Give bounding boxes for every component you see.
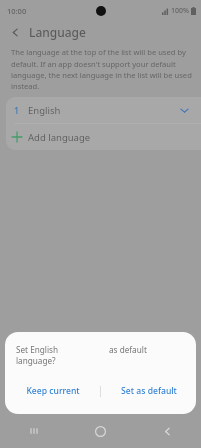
staticText: Language (29, 24, 86, 40)
staticText: 10:00 (7, 6, 27, 16)
staticText: Keep current (26, 385, 80, 397)
staticText: as default (109, 344, 147, 355)
staticText: English (28, 104, 61, 117)
button[interactable]: Navigate up (4, 21, 26, 43)
staticText: Set English language? (16, 344, 59, 366)
button[interactable]: Add language (6, 124, 201, 150)
button[interactable]: Set as default (101, 378, 196, 404)
button[interactable]: Back (134, 414, 201, 448)
staticText: 1 (14, 104, 20, 116)
button[interactable]: Home (67, 414, 134, 448)
staticText: 100% (171, 6, 189, 16)
button[interactable]: Recent apps (0, 414, 67, 448)
button[interactable]: 1 (6, 97, 201, 123)
button[interactable]: Keep current (5, 378, 100, 404)
staticText: The language at the top of the list will… (11, 47, 193, 91)
staticText: Add language (28, 131, 91, 144)
staticText: Set as default (121, 385, 177, 397)
